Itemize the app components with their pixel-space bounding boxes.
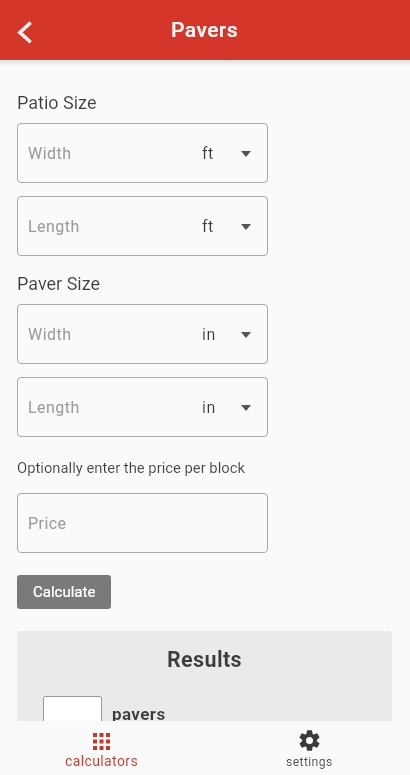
staticText: Width [28, 144, 72, 163]
staticText: Length [28, 217, 80, 236]
button[interactable]: Width [17, 304, 268, 364]
staticText: Length [28, 398, 80, 417]
staticText: Pavers [171, 18, 239, 43]
staticText: settings [286, 755, 333, 769]
button[interactable]: settings [259, 721, 359, 775]
button[interactable]: Length [17, 377, 268, 437]
staticText: Patio Size [17, 92, 97, 113]
button[interactable]: Price [17, 493, 268, 553]
button[interactable]: calculators [51, 721, 151, 775]
staticText: ft [202, 217, 214, 236]
staticText: Results [17, 647, 392, 672]
button[interactable]: Length [17, 196, 268, 256]
button[interactable]: Back [9, 16, 41, 48]
staticText: Optionally enter the price per block [17, 459, 245, 476]
staticText: ft [202, 144, 214, 163]
staticText: Width [28, 325, 72, 344]
staticText: in [202, 398, 216, 417]
staticText: in [202, 325, 216, 344]
staticText: Price [28, 514, 67, 533]
staticText: pavers [112, 704, 166, 724]
button[interactable]: Width [17, 123, 268, 183]
staticText: Calculate [33, 583, 96, 601]
staticText: Paver Size [17, 273, 101, 294]
button[interactable]: Calculate [17, 575, 111, 609]
staticText: calculators [65, 753, 138, 769]
